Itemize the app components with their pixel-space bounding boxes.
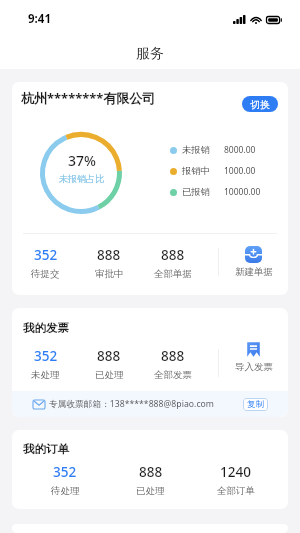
staticText: 报销中 [182,165,224,177]
staticText: 审批中 [95,268,124,280]
button[interactable]: 888 [77,246,141,280]
button[interactable]: 352 [22,463,108,497]
staticText: 未报销 [182,144,224,156]
other: 新建单据 [245,246,262,263]
staticText: 切换 [250,98,270,111]
staticText: 352 [34,347,58,365]
staticText: 全部单据 [154,268,192,280]
staticText: 已处理 [95,369,124,381]
staticText: 888 [139,463,163,481]
staticText: 复制 [247,399,264,410]
staticText: 888 [97,246,121,264]
button[interactable]: 1240 [193,463,278,497]
button[interactable]: 导入发票 [219,341,288,373]
staticText: 服务 [136,45,164,63]
staticText: 888 [161,347,185,365]
staticText: 888 [97,347,121,365]
staticText: 已处理 [136,485,165,497]
button[interactable]: 新建单据 [219,246,288,278]
staticText: 专属收票邮箱：138*****888@8piao.com [49,398,243,410]
staticText: 未报销占比 [59,173,104,184]
staticText: 已报销 [182,186,224,198]
staticText: 我的订单 [23,442,69,456]
staticText: 1240 [220,463,251,481]
button[interactable]: 352 [14,347,77,381]
button[interactable]: 切换 [242,96,278,112]
button[interactable]: 888 [77,347,141,381]
staticText: 8000.00 [224,144,256,156]
staticText: 导入发票 [235,361,273,373]
staticText: 全部发票 [154,369,192,381]
staticText: 888 [161,246,185,264]
staticText: 1000.00 [224,165,256,177]
button[interactable]: 复制 [243,398,268,411]
button[interactable]: 888 [108,463,193,497]
staticText: 9:41 [28,11,51,27]
staticText: 我的发票 [23,321,69,335]
other: 导入发票 [245,341,262,358]
staticText: 杭州********有限公司 [21,89,242,107]
staticText: 37% [68,151,96,170]
staticText: 10000.00 [224,186,261,198]
button[interactable]: 888 [141,347,205,381]
staticText: 待提交 [31,268,60,280]
staticText: 新建单据 [235,266,273,278]
button[interactable]: 888 [141,246,205,280]
staticText: 未处理 [31,369,60,381]
staticText: 待处理 [51,485,80,497]
staticText: 352 [34,246,58,264]
button[interactable]: 352 [14,246,77,280]
staticText: 352 [53,463,77,481]
staticText: 全部订单 [217,485,255,497]
